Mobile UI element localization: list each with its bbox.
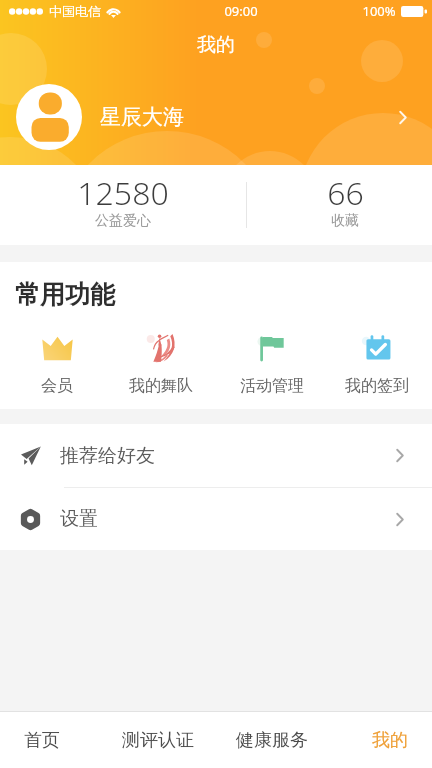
button[interactable]: 66 xyxy=(285,165,405,245)
staticText: 活动管理 xyxy=(240,376,304,396)
staticText: 12580 xyxy=(77,171,169,215)
staticText: 推荐给好友 xyxy=(60,444,155,468)
staticText: 中国电信 xyxy=(49,3,101,19)
staticText: 星辰大海 xyxy=(100,104,184,130)
button[interactable]: 测评认证 xyxy=(104,712,212,768)
button[interactable]: 12580 xyxy=(63,165,183,245)
staticText: 常用功能 xyxy=(15,279,115,310)
button[interactable]: 星辰大海 xyxy=(0,84,432,150)
button[interactable]: 我的签到 xyxy=(327,332,427,396)
staticText: 我的 xyxy=(197,33,235,57)
staticText: 我的签到 xyxy=(345,376,409,396)
staticText: 会员 xyxy=(41,376,73,396)
button[interactable]: 健康服务 xyxy=(218,712,326,768)
staticText: 健康服务 xyxy=(236,729,308,752)
button[interactable]: 会员 xyxy=(7,332,107,396)
staticText: 我的舞队 xyxy=(129,376,193,396)
button[interactable]: 首页 xyxy=(0,712,96,768)
staticText: 公益爱心 xyxy=(95,212,151,230)
staticText: 测评认证 xyxy=(122,729,194,752)
staticText: 设置 xyxy=(60,507,98,531)
button[interactable]: 设置 xyxy=(0,488,432,550)
staticText: 09:00 xyxy=(224,2,258,20)
button[interactable]: 我的舞队 xyxy=(111,332,211,396)
staticText: 100% xyxy=(362,2,396,20)
staticText: 我的 xyxy=(372,729,408,752)
staticText: 66 xyxy=(327,171,364,215)
button[interactable]: 我的 xyxy=(336,712,432,768)
staticText: 收藏 xyxy=(331,212,359,230)
button[interactable]: 活动管理 xyxy=(222,332,322,396)
button[interactable]: 推荐给好友 xyxy=(0,424,432,487)
staticText: 首页 xyxy=(24,729,60,752)
